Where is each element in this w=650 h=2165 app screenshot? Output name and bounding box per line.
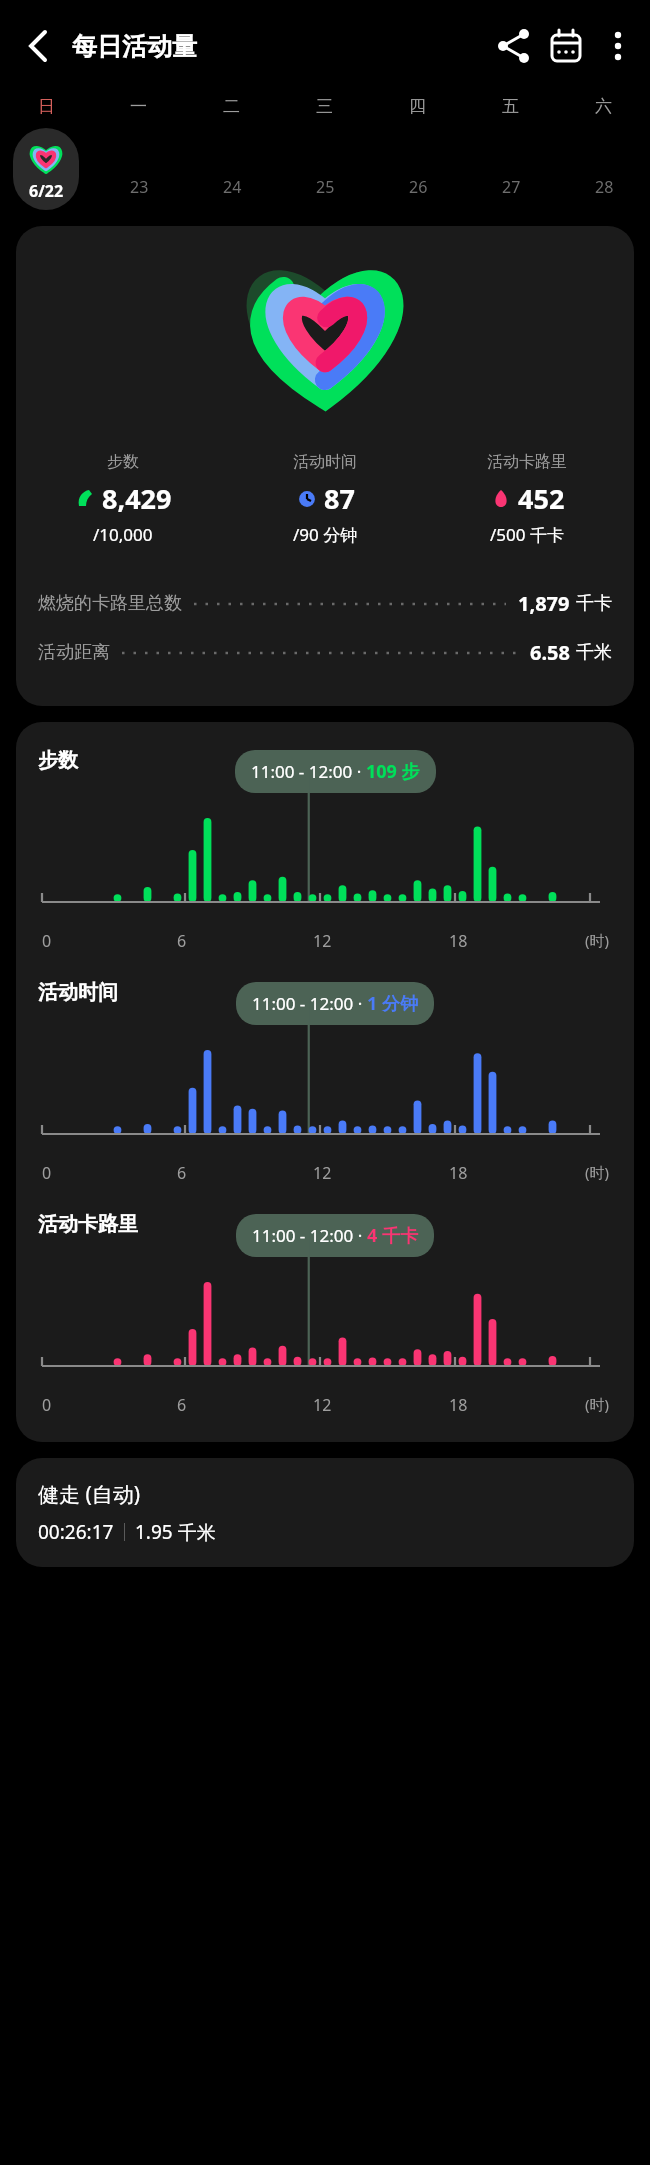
button[interactable]: 步数 [22,452,224,546]
staticText: 活动时间 [38,980,118,1005]
staticText: /10,000 [93,523,153,546]
button[interactable]: 活动时间 [224,452,426,546]
button[interactable]: 25 [292,128,358,210]
staticText: 00:26:17 [38,1519,114,1545]
staticText: 6/22 [29,180,64,202]
button[interactable]: 6/22 [13,128,79,210]
staticText: 1 分钟 [367,991,418,1016]
staticText: (时) [585,1394,610,1414]
staticText: 日 [38,96,55,117]
staticText: 千米 [576,641,612,664]
staticText: 6 [177,1394,187,1416]
staticText: 0 [42,930,52,952]
button[interactable]: 活动时间 [16,978,634,1184]
staticText: 109 步 [366,759,420,784]
button[interactable]: 28 [571,128,637,210]
staticText: 6 [177,930,187,952]
staticText: 0 [42,1394,52,1416]
button[interactable]: Calendar [540,20,592,72]
staticText: 6.58 [530,639,570,666]
button[interactable]: 健走 (自动) [16,1458,634,1567]
staticText: 4 千卡 [367,1223,418,1248]
button[interactable]: More options [592,20,644,72]
button[interactable]: 燃烧的卡路里总数 [38,590,612,617]
staticText: (时) [585,930,610,950]
button[interactable]: 步数 [16,226,634,706]
button[interactable]: 活动距离 [38,639,612,666]
staticText: 26 [409,176,428,198]
staticText: 四 [409,96,426,117]
staticText: 三 [316,96,333,117]
staticText: 28 [595,176,614,198]
staticText: 12 [313,930,332,952]
staticText: 燃烧的卡路里总数 [38,592,182,615]
staticText: 23 [130,176,149,198]
button[interactable]: 活动卡路里 [426,452,628,546]
staticText: 千卡 [576,592,612,615]
button[interactable]: 26 [385,128,451,210]
staticText: 五 [502,96,519,117]
staticText: 452 [518,480,565,517]
staticText: 二 [223,96,240,117]
staticText: /500 千卡 [490,523,564,546]
staticText: 11:00 - 12:00 · [251,760,366,783]
button[interactable]: 24 [199,128,265,210]
staticText: 活动距离 [38,641,110,664]
staticText: 25 [316,176,335,198]
staticText: 12 [313,1394,332,1416]
staticText: 每日活动量 [72,31,197,62]
button[interactable]: 23 [106,128,172,210]
button[interactable]: 步数 [16,746,634,952]
button[interactable]: 27 [478,128,544,210]
staticText: 12 [313,1162,332,1184]
staticText: 1,879 [518,590,570,617]
staticText: /90 分钟 [293,523,358,546]
staticText: 1.95 千米 [135,1519,216,1545]
button[interactable]: Back [12,20,64,72]
staticText: 11:00 - 12:00 · [252,992,367,1015]
staticText: 11:00 - 12:00 · [252,1224,367,1247]
staticText: 6 [177,1162,187,1184]
button[interactable]: 活动卡路里 [16,1210,634,1416]
button[interactable]: Share [488,20,540,72]
staticText: 18 [449,1394,468,1416]
staticText: 87 [324,480,355,517]
staticText: 24 [223,176,242,198]
staticText: 步数 [38,748,78,773]
staticText: 六 [595,96,612,117]
staticText: 步数 [107,452,139,472]
staticText: 18 [449,1162,468,1184]
staticText: 一 [130,96,147,117]
staticText: (时) [585,1162,610,1182]
staticText: 活动卡路里 [38,1212,138,1237]
staticText: 活动卡路里 [487,452,567,472]
staticText: 18 [449,930,468,952]
staticText: 健走 (自动) [38,1480,141,1509]
staticText: 活动时间 [293,452,357,472]
staticText: 0 [42,1162,52,1184]
staticText: 8,429 [102,480,172,517]
staticText: 27 [502,176,521,198]
